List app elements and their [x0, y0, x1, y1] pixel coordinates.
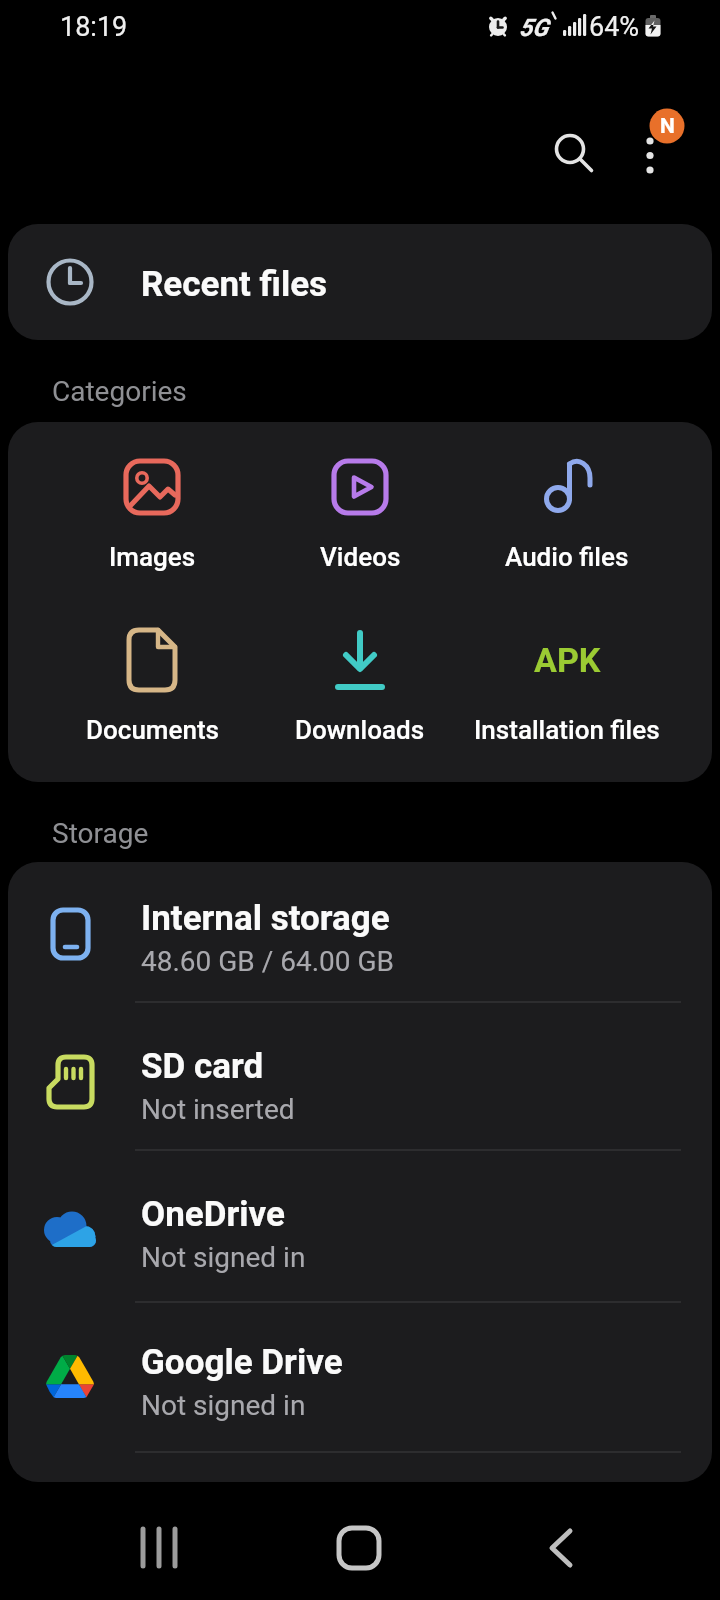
- staticText: Not inserted: [141, 1093, 295, 1126]
- button[interactable]: [8, 1308, 712, 1458]
- button[interactable]: [446, 613, 696, 758]
- staticText: SD card: [141, 1046, 264, 1087]
- staticText: Downloads: [295, 715, 425, 745]
- button[interactable]: [446, 440, 696, 585]
- staticText: Not signed in: [141, 1389, 306, 1422]
- staticText: OneDrive: [141, 1194, 285, 1235]
- button[interactable]: [30, 440, 274, 585]
- staticText: Categories: [52, 375, 187, 408]
- button[interactable]: [274, 613, 446, 758]
- staticText: Not signed in: [141, 1241, 306, 1274]
- button[interactable]: [8, 1158, 712, 1308]
- staticText: Images: [109, 542, 196, 572]
- staticText: Storage: [52, 817, 149, 850]
- button[interactable]: [8, 1010, 712, 1158]
- button[interactable]: [274, 440, 446, 585]
- button[interactable]: [524, 1510, 604, 1586]
- staticText: Videos: [320, 542, 401, 572]
- button[interactable]: [8, 224, 712, 340]
- button[interactable]: [8, 862, 712, 1010]
- button[interactable]: [30, 613, 274, 758]
- staticText: Documents: [86, 715, 219, 745]
- staticText: 5G: [519, 14, 549, 42]
- staticText: Audio files: [505, 542, 629, 572]
- staticText: 48.60 GB / 64.00 GB: [141, 945, 395, 978]
- staticText: Installation files: [474, 715, 660, 745]
- staticText: 18:19: [60, 11, 128, 43]
- staticText: N: [660, 114, 675, 139]
- staticText: 64%: [589, 11, 640, 43]
- staticText: Internal storage: [141, 898, 390, 939]
- staticText: Recent files: [141, 264, 328, 305]
- button[interactable]: [540, 120, 600, 180]
- button[interactable]: [120, 1510, 200, 1586]
- staticText: Google Drive: [141, 1342, 343, 1383]
- button[interactable]: [625, 120, 680, 190]
- staticText: APK: [534, 640, 601, 680]
- button[interactable]: [320, 1510, 400, 1586]
